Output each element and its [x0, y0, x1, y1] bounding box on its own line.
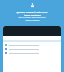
button[interactable]: [3, 48, 61, 50]
button[interactable]: [3, 52, 61, 54]
staticText: across devices: [25, 19, 40, 22]
staticText: Quickly connect with your: [16, 10, 48, 13]
staticText: team anytime: [24, 13, 41, 16]
button[interactable]: [3, 44, 61, 46]
staticText: Stay in touch with everyone: [18, 16, 46, 19]
